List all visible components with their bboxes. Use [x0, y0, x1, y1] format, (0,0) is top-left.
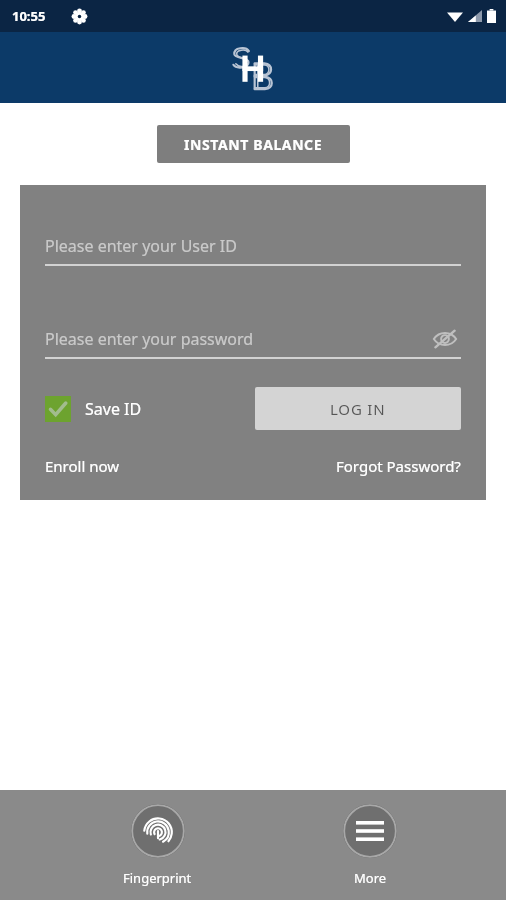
staticText: Please enter your User ID: [45, 235, 237, 257]
button[interactable]: Please enter your User ID: [45, 231, 461, 261]
staticText: INSTANT BALANCE: [184, 135, 323, 154]
staticText: LOG IN: [330, 399, 386, 419]
staticText: Save ID: [85, 398, 142, 420]
button[interactable]: LOG IN: [255, 387, 461, 430]
staticText: Please enter your password: [45, 328, 254, 350]
staticText: 10:55: [12, 7, 46, 25]
staticText: More: [354, 869, 387, 887]
button[interactable]: Please enter your password: [45, 324, 461, 354]
button[interactable]: Save ID: [45, 396, 142, 422]
staticText: Fingerprint: [123, 869, 192, 887]
staticText: Enroll now: [45, 456, 120, 476]
staticText: Forgot Password?: [336, 456, 461, 476]
button[interactable]: Fingerprint: [117, 802, 198, 889]
button[interactable]: Enroll now: [45, 456, 120, 476]
button[interactable]: Forgot Password?: [336, 456, 461, 476]
button[interactable]: Show password: [429, 324, 461, 354]
button[interactable]: More: [337, 802, 403, 889]
button[interactable]: INSTANT BALANCE: [157, 125, 350, 163]
